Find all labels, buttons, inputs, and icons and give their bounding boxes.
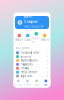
button[interactable]: Wallet <box>15 34 23 42</box>
staticText: Wallet <box>15 38 23 42</box>
button[interactable]: Privacy <box>13 66 50 70</box>
staticText: Sign out <box>20 74 32 78</box>
staticText: Personal info <box>20 51 39 54</box>
staticText: Payments <box>20 63 32 66</box>
staticText: Security <box>20 55 30 58</box>
staticText: ACCOUNT <box>16 46 30 49</box>
button[interactable]: Payments <box>13 62 50 66</box>
button[interactable]: Security <box>13 55 50 58</box>
button[interactable]: Offers <box>40 34 49 42</box>
button[interactable]: Home <box>13 80 23 86</box>
staticText: Privacy <box>20 66 28 70</box>
button[interactable]: Points <box>32 32 40 43</box>
staticText: Points <box>32 36 40 43</box>
staticText: jane.cooper@mail.com <box>24 25 43 32</box>
button[interactable]: Help center <box>13 70 50 74</box>
button[interactable]: Notifications <box>13 58 50 62</box>
button[interactable]: Me <box>41 80 50 86</box>
staticText: Notifications <box>20 59 37 62</box>
button[interactable]: Cards <box>23 80 32 86</box>
staticText: Jane Cooper <box>24 13 38 24</box>
staticText: Cards <box>24 83 31 86</box>
button[interactable]: Cards <box>23 34 32 42</box>
staticText: Home <box>14 83 22 86</box>
staticText: Cards <box>24 38 31 42</box>
button[interactable]: Personal info <box>13 51 50 55</box>
button[interactable]: Jane Cooper <box>15 16 49 29</box>
button[interactable]: Sign out <box>13 74 50 78</box>
staticText: Me <box>44 83 48 86</box>
staticText: Help center <box>20 70 37 74</box>
staticText: Stats <box>34 83 39 86</box>
staticText: Offers <box>41 38 49 42</box>
button[interactable]: Stats <box>32 80 41 86</box>
